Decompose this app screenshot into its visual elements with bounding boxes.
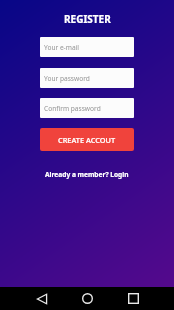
button[interactable]: Your password — [40, 68, 134, 88]
button[interactable]: CREATE ACCOUT — [40, 128, 134, 151]
button[interactable]: Back — [30, 287, 53, 310]
button[interactable]: Already a member? Login — [45, 170, 129, 179]
staticText: CREATE ACCOUT — [58, 135, 116, 145]
button[interactable]: Recents — [122, 287, 145, 310]
staticText: Already a member? Login — [45, 170, 129, 179]
button[interactable]: Home — [76, 287, 99, 310]
staticText: REGISTER — [64, 12, 111, 26]
button[interactable]: Confirm password — [40, 98, 134, 118]
staticText: Your e-mail — [44, 43, 80, 52]
staticText: Your password — [44, 74, 90, 83]
staticText: Confirm password — [44, 104, 101, 113]
button[interactable]: Your e-mail — [40, 37, 134, 57]
